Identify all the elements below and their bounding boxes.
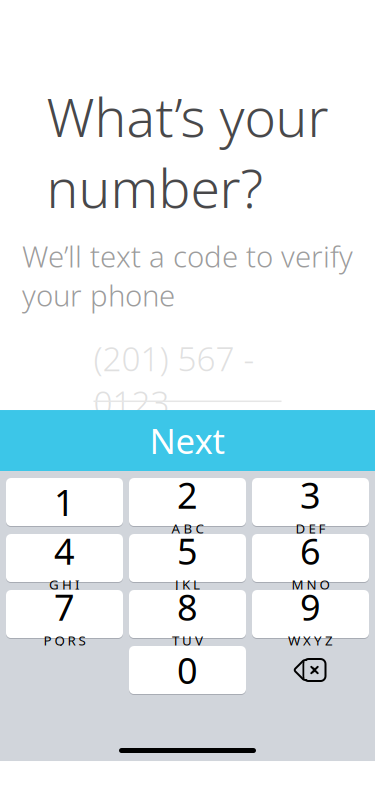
staticText: 5 xyxy=(177,527,198,575)
staticText: 6 xyxy=(300,527,321,575)
staticText: A B C xyxy=(171,520,203,537)
staticText: 4 xyxy=(54,527,75,575)
staticText: Next xyxy=(149,417,225,463)
staticText: P Q R S xyxy=(43,632,85,649)
staticText: What’s your number? xyxy=(46,81,328,223)
staticText: G H I xyxy=(49,576,80,593)
button[interactable]: 2 xyxy=(129,477,246,527)
button[interactable]: 0 xyxy=(129,645,246,695)
button[interactable]: 8 xyxy=(129,589,246,639)
staticText: 7 xyxy=(54,583,75,631)
button[interactable]: 5 xyxy=(129,533,246,583)
staticText: 1 xyxy=(54,478,75,526)
button[interactable]: 1 xyxy=(6,477,123,527)
button[interactable]: 7 xyxy=(6,589,123,639)
staticText: 8 xyxy=(177,583,198,631)
staticText: 2 xyxy=(177,471,198,519)
button[interactable]: Next xyxy=(0,410,375,471)
staticText: W X Y Z xyxy=(288,632,333,649)
staticText: M N O xyxy=(291,576,329,593)
button[interactable]: Delete xyxy=(252,646,369,694)
button[interactable]: 3 xyxy=(252,477,369,527)
button[interactable]: 4 xyxy=(6,533,123,583)
staticText: 3 xyxy=(300,471,321,519)
staticText: J K L xyxy=(175,576,200,593)
button[interactable]: 6 xyxy=(252,533,369,583)
staticText: We’ll text a code to verify your phone xyxy=(22,237,353,314)
button[interactable]: 9 xyxy=(252,589,369,639)
staticText: (201) 567 - 0123 xyxy=(93,336,254,425)
staticText: D E F xyxy=(295,520,325,537)
staticText: T U V xyxy=(172,632,203,649)
staticText: 9 xyxy=(300,583,321,631)
staticText: 0 xyxy=(177,646,198,694)
